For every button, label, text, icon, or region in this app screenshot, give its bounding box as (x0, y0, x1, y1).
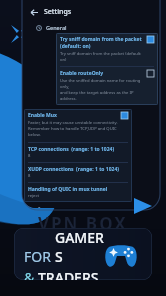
button[interactable]: Checked (121, 112, 128, 119)
staticText: GAMERS (55, 228, 104, 266)
staticText: General (46, 24, 67, 31)
staticText: Handling of QUIC in mux tunnel (28, 186, 108, 193)
staticText: Enable Mux (28, 112, 57, 119)
button[interactable]: Back (28, 6, 40, 18)
button[interactable]: Enable Mux (28, 112, 128, 138)
button[interactable]: Expand (8, 22, 32, 46)
button[interactable]: General (36, 24, 160, 31)
button[interactable]: Checked (147, 36, 154, 43)
other: Gaming (104, 241, 138, 267)
staticText: 8 (28, 153, 31, 159)
staticText: Try sniff domain from the packet (60, 36, 142, 43)
button[interactable]: TCP connections (range: 1 to 1024) (28, 146, 128, 159)
staticText: Settings (44, 7, 72, 17)
button[interactable]: Enable routeOnly (60, 70, 154, 102)
staticText: 8 (28, 173, 31, 179)
staticText: Use the sniffed domain name for routing … (60, 78, 144, 102)
staticText: TRADERS (38, 268, 99, 280)
staticText: (default: on) (60, 43, 91, 50)
staticText: Try sniff domain from the packet (defaul… (60, 51, 144, 63)
staticText: TCP connections (range: 1 to 1024) (28, 146, 115, 153)
button[interactable]: FOR (14, 228, 152, 280)
staticText: reject (28, 193, 39, 199)
staticText: VPN BOX (38, 212, 128, 235)
button[interactable]: Handling of QUIC in mux tunnel (28, 186, 128, 199)
staticText: XUDP connections (range: 1 to 1024) (28, 166, 119, 173)
staticText: FOR (24, 247, 55, 266)
button[interactable]: Try sniff domain from the packet (60, 36, 154, 63)
button[interactable]: Unchecked (147, 70, 154, 77)
button[interactable]: XUDP connections (range: 1 to 1024) (28, 166, 128, 179)
staticText: & (24, 268, 38, 280)
staticText: Enable routeOnly (60, 70, 104, 77)
staticText: Faster, but it may cause unstable connec… (28, 120, 118, 138)
